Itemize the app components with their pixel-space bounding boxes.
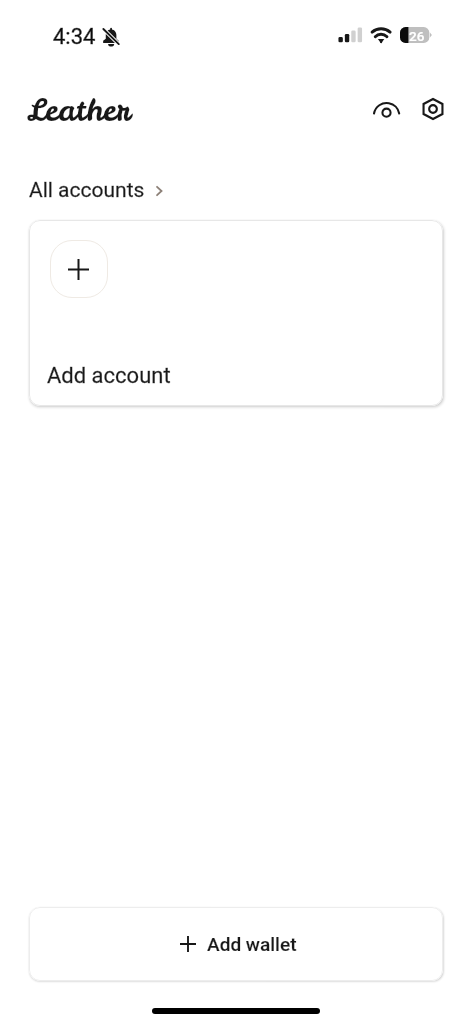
button[interactable]: Settings xyxy=(412,88,454,130)
button[interactable]: All accounts xyxy=(29,178,166,203)
staticText: 4:34 xyxy=(53,24,96,50)
staticText: Add account xyxy=(47,363,171,389)
staticText: Add wallet xyxy=(207,933,297,955)
button[interactable]: Toggle balance visibility xyxy=(365,92,407,134)
staticText: All accounts xyxy=(29,178,145,203)
staticText: Add account xyxy=(47,363,171,389)
button[interactable]: Add wallet xyxy=(29,907,443,981)
staticText: 26 xyxy=(409,28,425,44)
staticText: All accounts xyxy=(29,178,145,203)
button[interactable]: Add account xyxy=(29,220,443,406)
staticText: Leather xyxy=(27,89,131,131)
staticText: Add wallet xyxy=(207,933,297,955)
staticText: 4:34 xyxy=(53,24,96,50)
